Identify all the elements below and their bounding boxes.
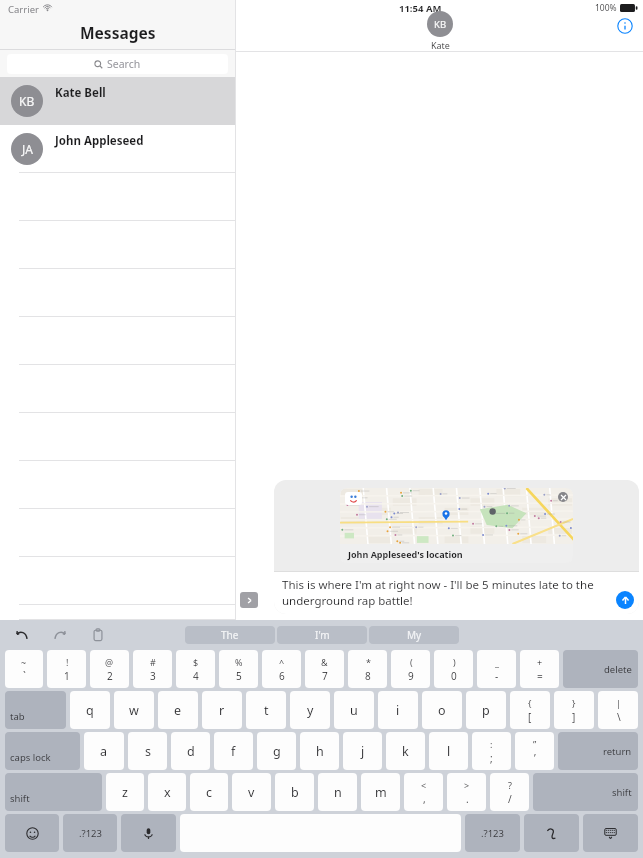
button[interactable]: d xyxy=(171,732,210,770)
button[interactable]: > xyxy=(447,773,486,811)
staticText: + xyxy=(537,656,543,668)
button[interactable]: j xyxy=(343,732,382,770)
button[interactable]: @ xyxy=(90,650,129,688)
button[interactable]: Search xyxy=(7,54,228,74)
button[interactable]: e xyxy=(158,691,198,729)
staticText: ’ xyxy=(534,751,536,765)
button[interactable]: l xyxy=(429,732,468,770)
staticText: @ xyxy=(105,656,114,668)
staticText: $ xyxy=(193,656,199,668)
button[interactable]: _ xyxy=(477,650,516,688)
button[interactable]: : xyxy=(472,732,511,770)
button[interactable]: ! xyxy=(47,650,86,688)
staticText: * xyxy=(366,656,371,668)
button[interactable]: k xyxy=(386,732,425,770)
button[interactable]: g xyxy=(257,732,296,770)
staticText: u xyxy=(350,702,358,719)
staticText: John Appleseed's location xyxy=(348,548,463,560)
button[interactable]: ^ xyxy=(262,650,301,688)
button[interactable]: * xyxy=(348,650,387,688)
staticText: o xyxy=(438,702,446,719)
button[interactable]: Apps xyxy=(240,592,258,608)
button[interactable]: | xyxy=(598,691,638,729)
button[interactable]: The xyxy=(185,626,275,644)
button[interactable]: .?123 xyxy=(63,814,117,852)
button[interactable]: shift xyxy=(5,773,102,811)
staticText: c xyxy=(206,784,213,801)
staticText: _ xyxy=(495,656,499,668)
staticText: ; xyxy=(490,751,493,765)
button[interactable]: My xyxy=(369,626,459,644)
button[interactable]: KB xyxy=(427,11,453,51)
button[interactable]: Handwriting xyxy=(524,814,579,852)
button[interactable]: c xyxy=(190,773,228,811)
button[interactable]: Emoji xyxy=(5,814,59,852)
button[interactable]: t xyxy=(246,691,286,729)
button[interactable]: tab xyxy=(5,691,66,729)
button[interactable]: ~ xyxy=(5,650,43,688)
staticText: Messages xyxy=(80,22,156,43)
button[interactable]: ( xyxy=(391,650,430,688)
staticText: delete xyxy=(604,663,632,676)
button[interactable]: ) xyxy=(434,650,473,688)
button[interactable]: { xyxy=(510,691,550,729)
button[interactable]: y xyxy=(290,691,330,729)
button[interactable]: r xyxy=(202,691,242,729)
button[interactable]: p xyxy=(466,691,506,729)
button[interactable]: shift xyxy=(533,773,638,811)
button[interactable]: m xyxy=(361,773,400,811)
staticText: a xyxy=(100,743,108,760)
button[interactable]: return xyxy=(558,732,638,770)
staticText: 0 xyxy=(451,669,457,683)
button[interactable]: } xyxy=(554,691,594,729)
staticText: return xyxy=(603,745,632,758)
staticText: 7 xyxy=(322,669,328,683)
button[interactable]: b xyxy=(275,773,314,811)
button[interactable]: s xyxy=(128,732,167,770)
button[interactable]: JA xyxy=(0,125,235,173)
button[interactable]: .?123 xyxy=(465,814,520,852)
staticText: y xyxy=(307,702,314,719)
button[interactable]: Send xyxy=(616,591,634,609)
button[interactable]: + xyxy=(520,650,559,688)
button[interactable]: % xyxy=(219,650,258,688)
button[interactable]: ” xyxy=(515,732,554,770)
button[interactable]: a xyxy=(84,732,124,770)
button[interactable]: n xyxy=(318,773,357,811)
button[interactable]: Dictation xyxy=(121,814,176,852)
button[interactable]: caps lock xyxy=(5,732,80,770)
staticText: j xyxy=(361,743,365,760)
button[interactable]: Hide keyboard xyxy=(583,814,638,852)
button[interactable]: Undo xyxy=(12,625,32,645)
button[interactable]: v xyxy=(232,773,271,811)
staticText: John Appleseed xyxy=(55,133,144,149)
button[interactable]: I'm xyxy=(277,626,367,644)
button[interactable]: w xyxy=(114,691,154,729)
button[interactable]: f xyxy=(214,732,253,770)
button[interactable]: Redo xyxy=(50,625,70,645)
button[interactable]: q xyxy=(70,691,110,729)
button[interactable]: z xyxy=(106,773,144,811)
button[interactable]: i xyxy=(378,691,418,729)
button[interactable]: Paste xyxy=(88,625,108,645)
button[interactable]: Details xyxy=(615,16,635,36)
button[interactable]: & xyxy=(305,650,344,688)
button[interactable]: h xyxy=(300,732,339,770)
staticText: 4 xyxy=(193,669,199,683)
staticText: % xyxy=(235,656,243,668)
staticText: < xyxy=(421,779,427,791)
button[interactable]: $ xyxy=(176,650,215,688)
button[interactable]: delete xyxy=(563,650,638,688)
button[interactable]: o xyxy=(422,691,462,729)
staticText: - xyxy=(495,669,499,683)
button[interactable]: # xyxy=(133,650,172,688)
button[interactable]: ? xyxy=(490,773,529,811)
button[interactable]: < xyxy=(404,773,443,811)
button[interactable]: Close xyxy=(558,492,568,502)
button[interactable]: x xyxy=(148,773,186,811)
button[interactable]: Close xyxy=(274,480,639,614)
staticText: ` xyxy=(23,669,26,683)
button[interactable]: KB xyxy=(0,77,235,125)
button[interactable]: u xyxy=(334,691,374,729)
